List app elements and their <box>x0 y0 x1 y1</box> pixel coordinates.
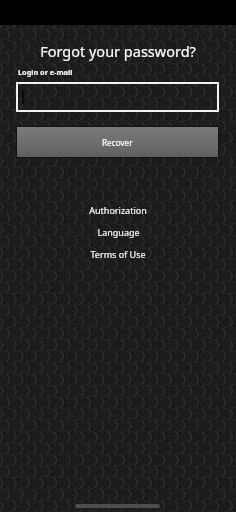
staticText: Forgot your password? <box>0 41 236 61</box>
button[interactable]: Language <box>0 226 236 242</box>
button[interactable]: Terms of Use <box>0 248 236 264</box>
button[interactable]: Authorization <box>0 204 236 220</box>
staticText: Language <box>97 226 140 238</box>
staticText: Authorization <box>89 204 147 216</box>
staticText: Login or e-mail <box>18 67 73 77</box>
staticText: Recover <box>102 137 133 148</box>
button[interactable] <box>16 82 219 112</box>
staticText: Terms of Use <box>90 248 146 260</box>
button[interactable]: Recover <box>17 127 218 157</box>
